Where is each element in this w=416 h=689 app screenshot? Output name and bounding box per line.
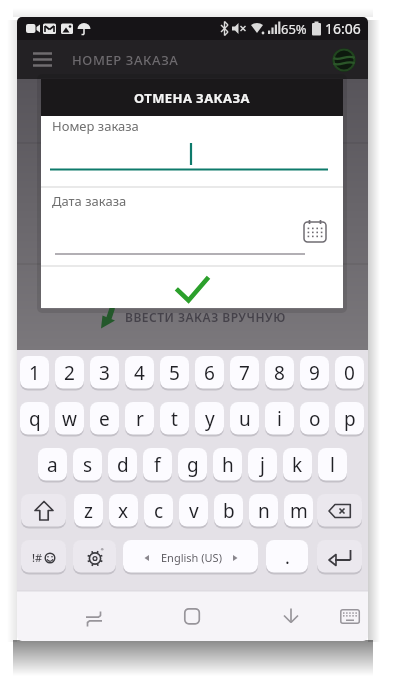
staticText: p bbox=[344, 406, 356, 432]
button[interactable]: n bbox=[249, 494, 278, 528]
staticText: y bbox=[205, 406, 215, 432]
staticText: Номер заказа bbox=[52, 117, 139, 135]
button[interactable]: Дата заказа bbox=[52, 192, 232, 210]
button[interactable]: a bbox=[38, 448, 67, 482]
staticText: c bbox=[154, 498, 164, 524]
staticText: k bbox=[292, 452, 303, 478]
button[interactable] bbox=[317, 494, 362, 528]
button[interactable] bbox=[335, 603, 365, 629]
staticText: r bbox=[136, 406, 144, 432]
staticText: z bbox=[84, 498, 93, 524]
staticText: 6 bbox=[204, 360, 215, 386]
staticText: . bbox=[285, 545, 290, 570]
button[interactable] bbox=[267, 601, 315, 631]
button[interactable]: g bbox=[178, 448, 207, 482]
staticText: i bbox=[277, 406, 282, 432]
button[interactable]: t bbox=[160, 402, 189, 436]
button[interactable]: c bbox=[144, 494, 173, 528]
button[interactable]: 0 bbox=[335, 356, 364, 390]
button[interactable] bbox=[317, 540, 362, 574]
button[interactable]: r bbox=[125, 402, 154, 436]
button[interactable]: x bbox=[109, 494, 138, 528]
button[interactable] bbox=[168, 601, 216, 631]
staticText: l bbox=[330, 452, 335, 478]
button[interactable]: u bbox=[230, 402, 259, 436]
staticText: 65% bbox=[281, 20, 307, 38]
button[interactable]: w bbox=[55, 402, 84, 436]
button[interactable]: Номер заказа bbox=[52, 117, 232, 135]
staticText: 7 bbox=[239, 360, 250, 386]
button[interactable]: l bbox=[318, 448, 347, 482]
button[interactable]: i bbox=[265, 402, 294, 436]
staticText: v bbox=[189, 498, 199, 524]
staticText: f bbox=[154, 452, 161, 478]
button[interactable]: 8 bbox=[265, 356, 294, 390]
staticText: 8 bbox=[274, 360, 285, 386]
button[interactable]: e bbox=[90, 402, 119, 436]
staticText: 1 bbox=[29, 360, 40, 386]
button[interactable]: k bbox=[283, 448, 312, 482]
button[interactable]: 7 bbox=[230, 356, 259, 390]
button[interactable]: y bbox=[195, 402, 224, 436]
staticText: d bbox=[117, 452, 129, 478]
staticText: 0 bbox=[344, 360, 355, 386]
button[interactable]: 9 bbox=[300, 356, 329, 390]
button[interactable]: m bbox=[284, 494, 313, 528]
button[interactable]: !# bbox=[21, 540, 66, 574]
staticText: t bbox=[171, 406, 178, 432]
staticText: Дата заказа bbox=[52, 192, 127, 210]
button[interactable]: 3 bbox=[90, 356, 119, 390]
button[interactable]: q bbox=[20, 402, 49, 436]
staticText: g bbox=[187, 452, 199, 478]
staticText: English (US) bbox=[161, 550, 222, 565]
button[interactable] bbox=[70, 601, 118, 631]
staticText: h bbox=[222, 452, 234, 478]
button[interactable]: j bbox=[248, 448, 277, 482]
staticText: 2 bbox=[64, 360, 75, 386]
button[interactable]: 2 bbox=[55, 356, 84, 390]
button[interactable]: . bbox=[266, 540, 308, 574]
staticText: ВВЕСТИ ЗАКАЗ ВРУЧНУЮ bbox=[125, 309, 286, 325]
staticText: e bbox=[99, 406, 110, 432]
button[interactable]: v bbox=[179, 494, 208, 528]
staticText: 16:06 bbox=[325, 19, 361, 38]
button[interactable]: 4 bbox=[125, 356, 154, 390]
staticText: b bbox=[223, 498, 235, 524]
button[interactable]: d bbox=[108, 448, 137, 482]
staticText: ОТМЕНА ЗАКАЗА bbox=[134, 89, 250, 107]
button[interactable]: 6 bbox=[195, 356, 224, 390]
button[interactable] bbox=[25, 44, 59, 75]
staticText: s bbox=[83, 452, 93, 478]
staticText: !# bbox=[32, 550, 43, 565]
staticText: q bbox=[29, 406, 41, 432]
staticText: НОМЕР ЗАКАЗА bbox=[72, 51, 179, 69]
staticText: w bbox=[62, 406, 77, 432]
button[interactable] bbox=[21, 494, 66, 528]
button[interactable]: f bbox=[143, 448, 172, 482]
button[interactable] bbox=[167, 271, 217, 308]
staticText: u bbox=[239, 406, 251, 432]
button[interactable]: b bbox=[214, 494, 243, 528]
staticText: m bbox=[290, 498, 308, 524]
staticText: a bbox=[47, 452, 58, 478]
staticText: 5 bbox=[169, 360, 180, 386]
button[interactable]: h bbox=[213, 448, 242, 482]
staticText: n bbox=[258, 498, 270, 524]
button[interactable] bbox=[73, 540, 116, 574]
button[interactable]: p bbox=[335, 402, 364, 436]
button[interactable]: z bbox=[74, 494, 103, 528]
staticText: o bbox=[309, 406, 321, 432]
button[interactable]: s bbox=[73, 448, 102, 482]
button[interactable]: ВВЕСТИ ЗАКАЗ ВРУЧНУЮ bbox=[77, 305, 307, 331]
staticText: j bbox=[260, 452, 265, 478]
staticText: 3 bbox=[99, 360, 110, 386]
staticText: 4 bbox=[134, 360, 145, 386]
staticText: 9 bbox=[309, 360, 320, 386]
button[interactable]: English (US) bbox=[123, 540, 258, 574]
staticText: x bbox=[118, 498, 129, 524]
button[interactable]: 1 bbox=[20, 356, 49, 390]
button[interactable]: o bbox=[300, 402, 329, 436]
button[interactable] bbox=[302, 218, 328, 245]
button[interactable]: 5 bbox=[160, 356, 189, 390]
